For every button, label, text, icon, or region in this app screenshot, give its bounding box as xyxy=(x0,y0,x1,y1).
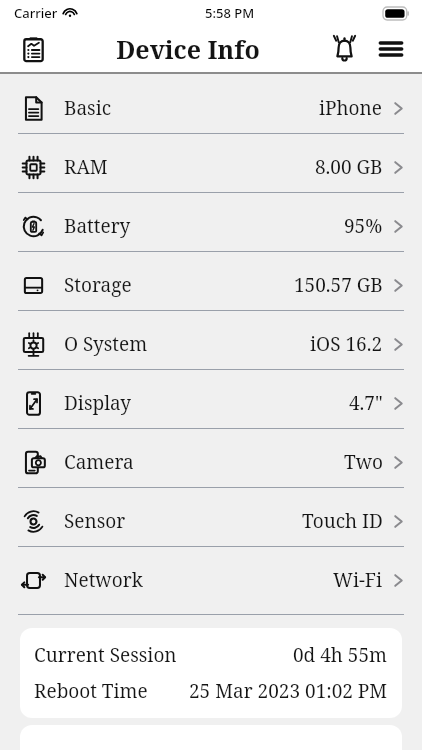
button[interactable]: Display xyxy=(0,378,422,428)
staticText: 8.00 GB xyxy=(315,154,383,180)
staticText: Network xyxy=(64,567,143,593)
staticText: Wi-Fi xyxy=(333,567,383,593)
staticText: O System xyxy=(64,331,148,357)
staticText: iPhone xyxy=(319,95,383,121)
button[interactable]: Network xyxy=(0,555,422,605)
staticText: Sensor xyxy=(64,508,126,534)
staticText: Device Info xyxy=(116,32,260,66)
button[interactable]: RAM xyxy=(0,142,422,192)
staticText: 0d 4h 55m xyxy=(293,642,388,668)
button[interactable]: Camera xyxy=(0,437,422,487)
staticText: 25 Mar 2023 01:02 PM xyxy=(189,678,388,704)
button[interactable]: Storage xyxy=(0,260,422,310)
staticText: RAM xyxy=(64,154,108,180)
staticText: iOS 16.2 xyxy=(310,331,383,357)
button[interactable]: O System xyxy=(0,319,422,369)
staticText: Display xyxy=(64,390,132,416)
button[interactable]: Current Session xyxy=(20,628,402,718)
button[interactable]: Notifications xyxy=(322,27,366,71)
staticText: 95% xyxy=(344,213,383,239)
staticText: Storage xyxy=(64,272,132,298)
button[interactable]: Report xyxy=(12,28,54,70)
staticText: Touch ID xyxy=(302,508,383,534)
button[interactable]: Sensor xyxy=(0,496,422,546)
staticText: 5:58 PM xyxy=(205,4,255,22)
staticText: Current Session xyxy=(34,642,177,668)
button[interactable]: Basic xyxy=(0,83,422,133)
staticText: Carrier xyxy=(14,4,58,22)
button[interactable]: Menu xyxy=(372,30,410,68)
staticText: Camera xyxy=(64,449,134,475)
staticText: Reboot Time xyxy=(34,678,148,704)
staticText: Two xyxy=(344,449,383,475)
staticText: Battery xyxy=(64,213,131,239)
staticText: Basic xyxy=(64,95,112,121)
staticText: 4.7" xyxy=(349,390,383,416)
staticText: 150.57 GB xyxy=(294,272,383,298)
button[interactable]: Battery xyxy=(0,201,422,251)
